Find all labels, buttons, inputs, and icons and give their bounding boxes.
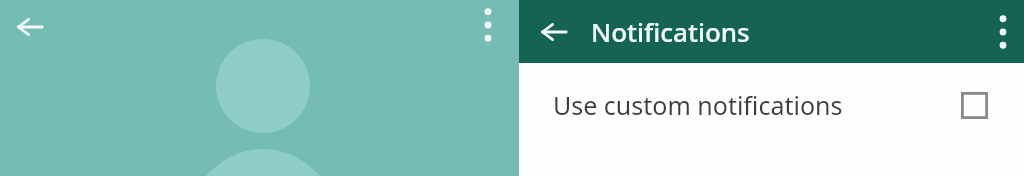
other: Use custom notifications checkbox <box>961 92 988 119</box>
button[interactable]: More options <box>988 12 1018 52</box>
button[interactable]: Navigate up <box>13 10 47 44</box>
button[interactable]: Navigate up <box>537 15 571 49</box>
staticText: Use custom notifications <box>553 88 843 122</box>
button[interactable]: More options <box>473 5 503 45</box>
staticText: Notifications <box>591 14 750 49</box>
button[interactable]: Use custom notifications <box>519 63 1024 145</box>
